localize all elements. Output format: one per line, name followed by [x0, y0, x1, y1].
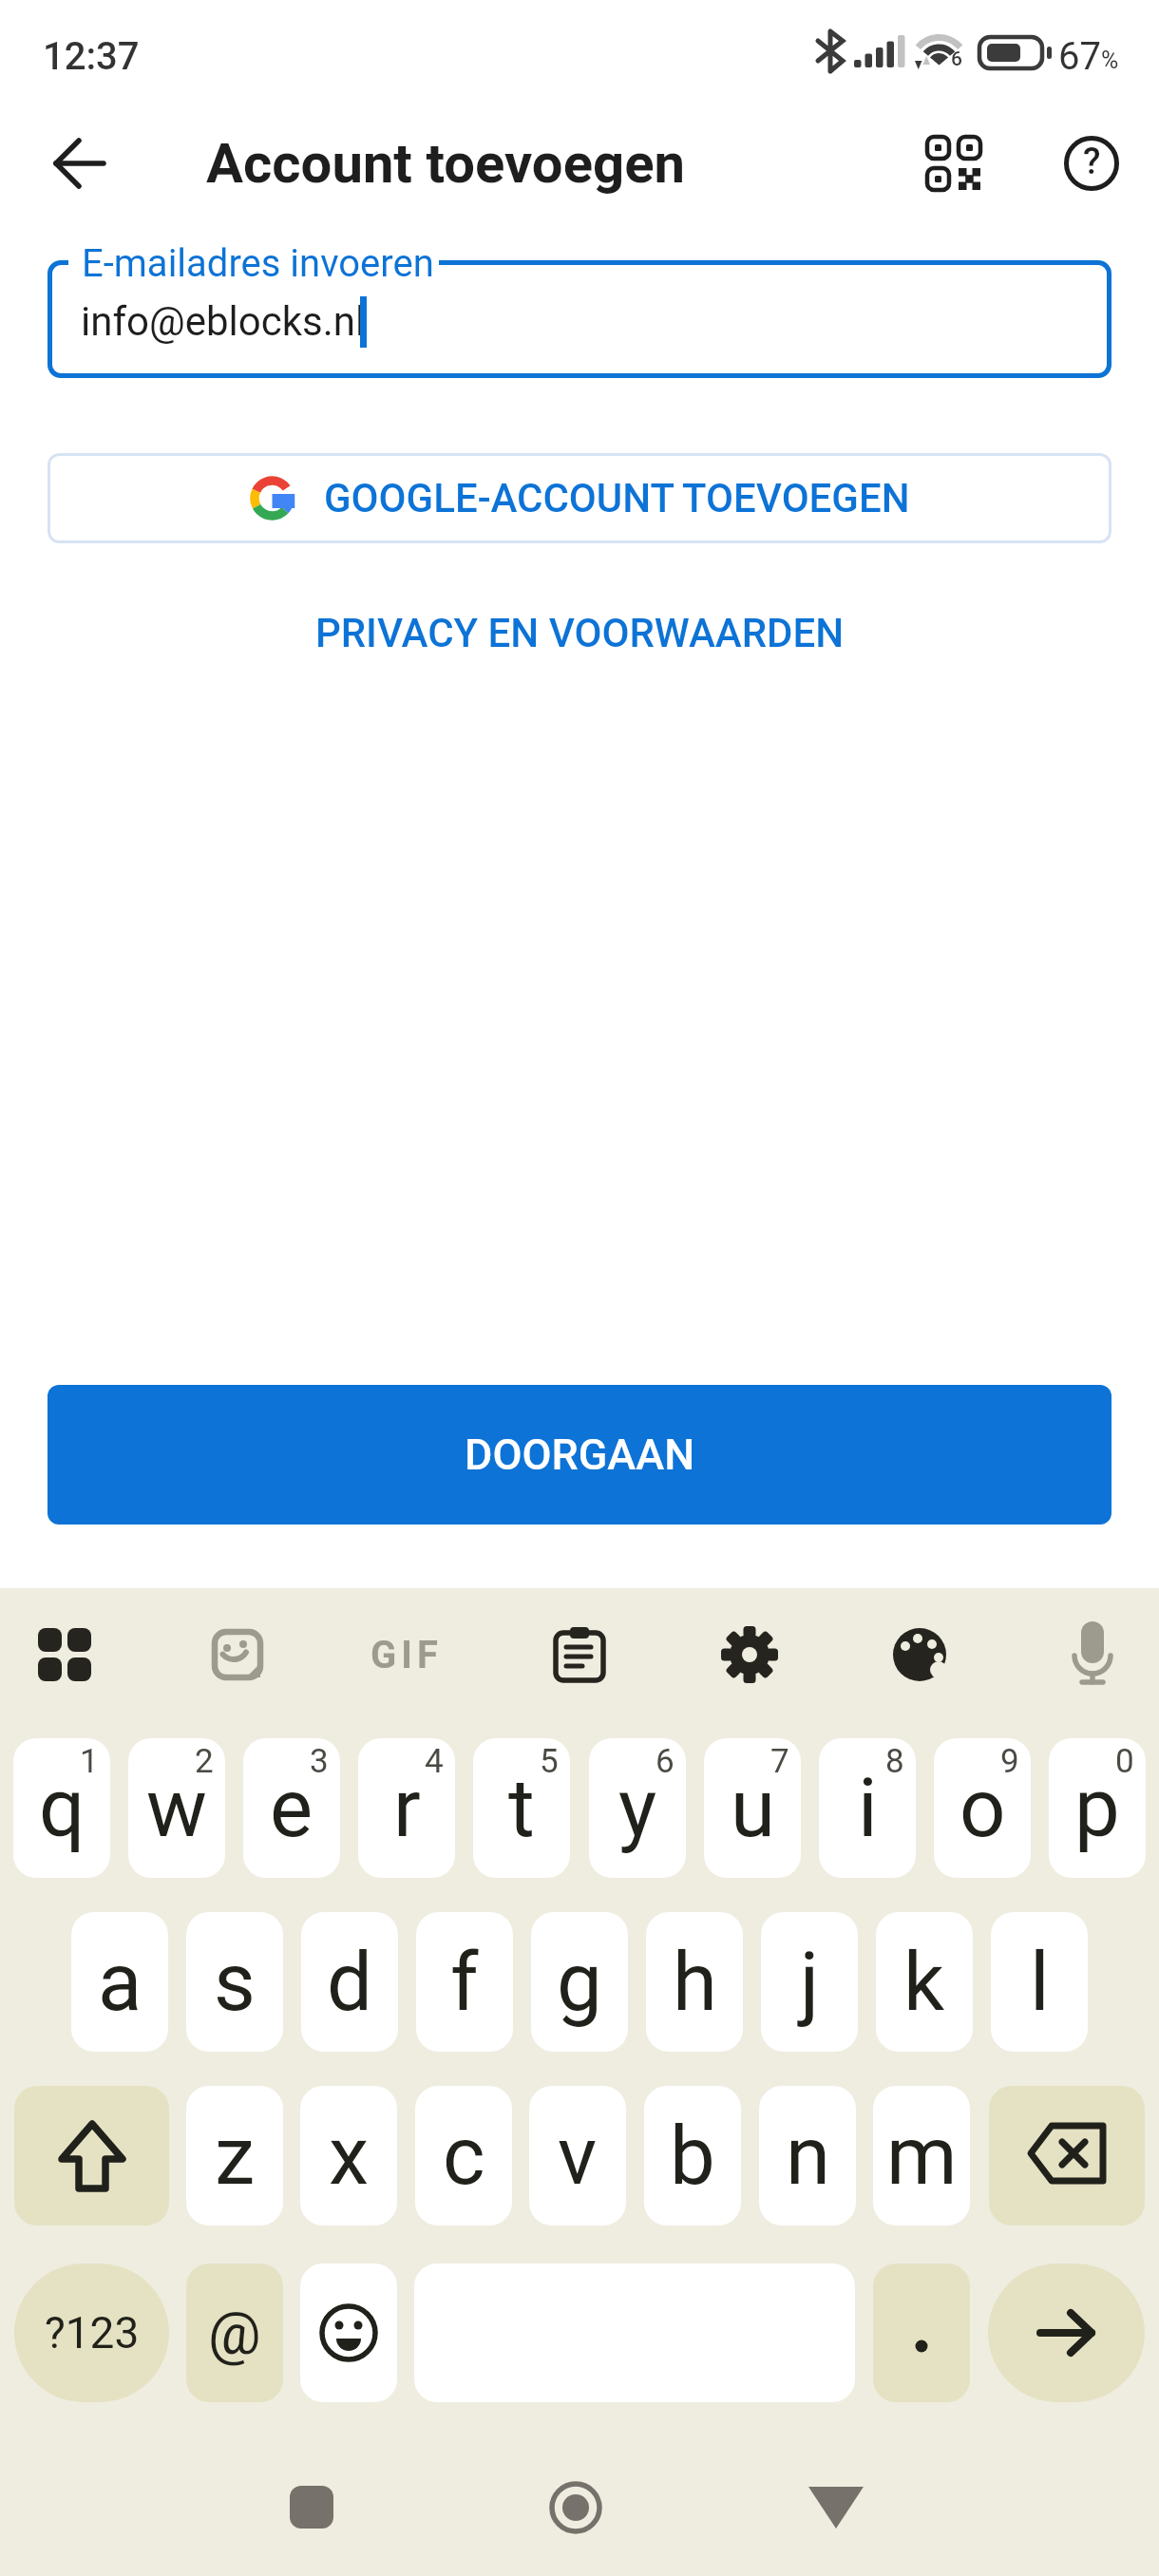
- button[interactable]: g: [531, 1912, 628, 2052]
- button[interactable]: t: [473, 1738, 570, 1878]
- button[interactable]: DOORGAAN: [47, 1385, 1111, 1525]
- button[interactable]: a: [71, 1912, 168, 2052]
- button[interactable]: [300, 2263, 397, 2402]
- button[interactable]: [530, 2464, 621, 2551]
- button[interactable]: c: [415, 2086, 512, 2226]
- button[interactable]: [535, 1609, 626, 1700]
- staticText: a: [98, 1935, 142, 2030]
- staticText: DOORGAAN: [465, 1430, 695, 1480]
- staticText: ?: [1083, 141, 1101, 183]
- staticText: 6: [655, 1742, 674, 1781]
- button[interactable]: [34, 120, 125, 207]
- button[interactable]: [988, 2263, 1145, 2402]
- button[interactable]: [874, 1609, 965, 1700]
- button[interactable]: p: [1049, 1738, 1146, 1878]
- button[interactable]: [414, 2263, 855, 2402]
- staticText: k: [903, 1935, 945, 2030]
- button[interactable]: [873, 2263, 970, 2402]
- button[interactable]: [1047, 1609, 1138, 1700]
- button[interactable]: h: [646, 1912, 743, 2052]
- button[interactable]: n: [759, 2086, 856, 2226]
- button[interactable]: [47, 260, 1111, 378]
- staticText: c: [443, 2109, 485, 2204]
- button[interactable]: GOOGLE-ACCOUNT TOEVOEGEN: [47, 453, 1111, 543]
- staticText: PRIVACY EN VOORWAARDEN: [315, 610, 845, 656]
- button[interactable]: ?123: [14, 2263, 169, 2402]
- staticText: g: [557, 1935, 602, 2030]
- button[interactable]: PRIVACY EN VOORWAARDEN: [0, 606, 1159, 659]
- staticText: y: [618, 1761, 657, 1856]
- staticText: GIF: [370, 1633, 443, 1677]
- button[interactable]: l: [991, 1912, 1088, 2052]
- staticText: w: [146, 1761, 207, 1856]
- button[interactable]: z: [186, 2086, 283, 2226]
- button[interactable]: w: [128, 1738, 225, 1878]
- button[interactable]: r: [358, 1738, 455, 1878]
- button[interactable]: v: [529, 2086, 626, 2226]
- staticText: 7: [770, 1742, 789, 1781]
- staticText: q: [39, 1761, 85, 1856]
- staticText: z: [215, 2109, 256, 2204]
- button[interactable]: [790, 2464, 882, 2551]
- staticText: 1: [80, 1742, 99, 1781]
- staticText: d: [327, 1935, 372, 2030]
- staticText: s: [214, 1935, 256, 2030]
- button[interactable]: y: [589, 1738, 686, 1878]
- staticText: t: [508, 1761, 535, 1856]
- staticText: u: [731, 1761, 775, 1856]
- staticText: n: [786, 2109, 830, 2204]
- button[interactable]: i: [819, 1738, 916, 1878]
- staticText: ?123: [45, 2307, 140, 2358]
- button[interactable]: [14, 2086, 169, 2226]
- button[interactable]: o: [934, 1738, 1031, 1878]
- staticText: info@eblocks.nl: [81, 298, 366, 345]
- staticText: E-mailadres invoeren: [82, 241, 434, 285]
- staticText: f: [450, 1935, 479, 2030]
- staticText: b: [670, 2109, 715, 2204]
- staticText: 8: [885, 1742, 904, 1781]
- staticText: 0: [1115, 1742, 1134, 1781]
- button[interactable]: f: [416, 1912, 513, 2052]
- staticText: h: [673, 1935, 717, 2030]
- staticText: i: [858, 1761, 878, 1856]
- staticText: 12:37: [43, 34, 140, 78]
- button[interactable]: [192, 1609, 283, 1700]
- staticText: r: [393, 1761, 421, 1856]
- staticText: %: [1101, 47, 1119, 74]
- button[interactable]: @: [186, 2263, 283, 2402]
- staticText: 2: [195, 1742, 214, 1781]
- button[interactable]: d: [301, 1912, 398, 2052]
- staticText: x: [329, 2109, 370, 2204]
- button[interactable]: GIF: [361, 1609, 452, 1700]
- staticText: @: [208, 2299, 261, 2368]
- button[interactable]: [19, 1609, 110, 1700]
- button[interactable]: e: [243, 1738, 340, 1878]
- staticText: 3: [310, 1742, 329, 1781]
- button[interactable]: b: [644, 2086, 741, 2226]
- button[interactable]: [908, 118, 999, 209]
- staticText: GOOGLE-ACCOUNT TOEVOEGEN: [324, 475, 910, 521]
- button[interactable]: j: [761, 1912, 858, 2052]
- button[interactable]: u: [704, 1738, 801, 1878]
- staticText: 67: [1058, 34, 1101, 76]
- staticText: o: [959, 1761, 1006, 1856]
- staticText: 6: [951, 47, 962, 71]
- button[interactable]: [266, 2464, 357, 2551]
- button[interactable]: q: [13, 1738, 110, 1878]
- staticText: v: [558, 2109, 598, 2204]
- staticText: j: [800, 1935, 820, 2030]
- button[interactable]: s: [186, 1912, 283, 2052]
- button[interactable]: [989, 2086, 1145, 2226]
- staticText: 4: [425, 1742, 444, 1781]
- button[interactable]: [704, 1609, 795, 1700]
- staticText: 5: [540, 1742, 559, 1781]
- button[interactable]: m: [873, 2086, 970, 2226]
- button[interactable]: k: [876, 1912, 973, 2052]
- staticText: m: [886, 2109, 958, 2204]
- button[interactable]: ?: [1046, 118, 1137, 209]
- staticText: p: [1074, 1761, 1120, 1856]
- staticText: Account toevoegen: [206, 131, 685, 196]
- staticText: 9: [1000, 1742, 1019, 1781]
- staticText: e: [270, 1761, 313, 1856]
- button[interactable]: x: [300, 2086, 397, 2226]
